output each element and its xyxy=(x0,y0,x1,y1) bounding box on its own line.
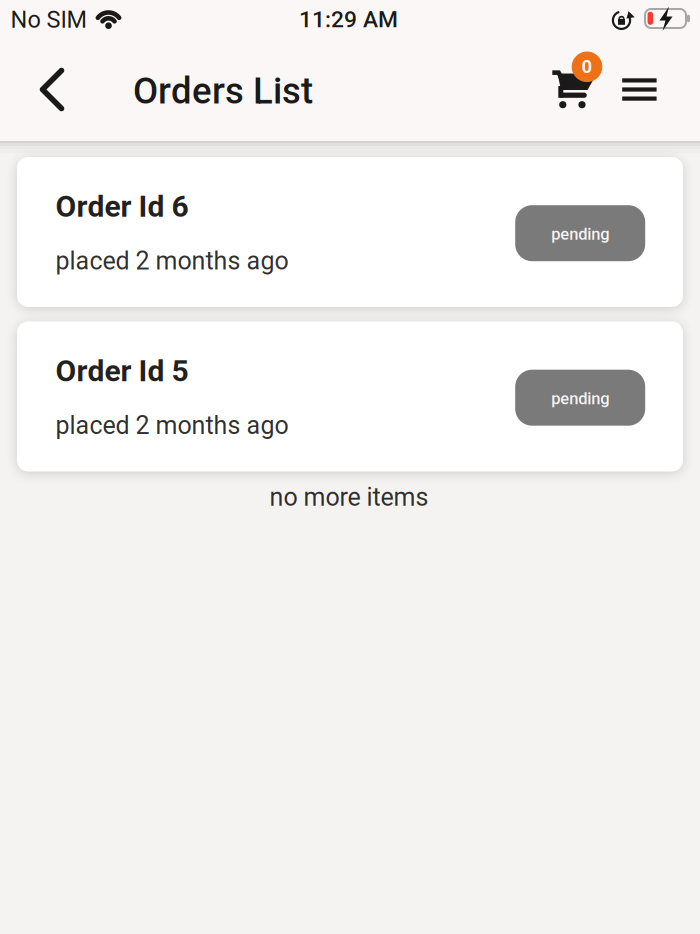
staticText: no more items xyxy=(269,483,428,512)
staticText: No SIM xyxy=(10,6,87,33)
button[interactable]: Order Id 5 xyxy=(17,321,683,471)
button[interactable]: pending xyxy=(515,370,645,426)
button[interactable] xyxy=(30,65,74,113)
staticText: 0 xyxy=(581,56,592,78)
staticText: placed 2 months ago xyxy=(55,246,288,276)
button[interactable]: 0 xyxy=(546,46,606,112)
button[interactable]: Order Id 6 xyxy=(17,157,683,307)
staticText: Order Id 5 xyxy=(55,353,188,389)
staticText: pending xyxy=(551,389,609,408)
button[interactable] xyxy=(615,69,663,109)
staticText: placed 2 months ago xyxy=(55,411,288,440)
staticText: Order Id 6 xyxy=(55,189,188,224)
staticText: pending xyxy=(551,224,609,244)
staticText: Orders List xyxy=(133,70,313,112)
staticText: 11:29 AM xyxy=(299,6,398,33)
button[interactable]: pending xyxy=(515,205,645,261)
